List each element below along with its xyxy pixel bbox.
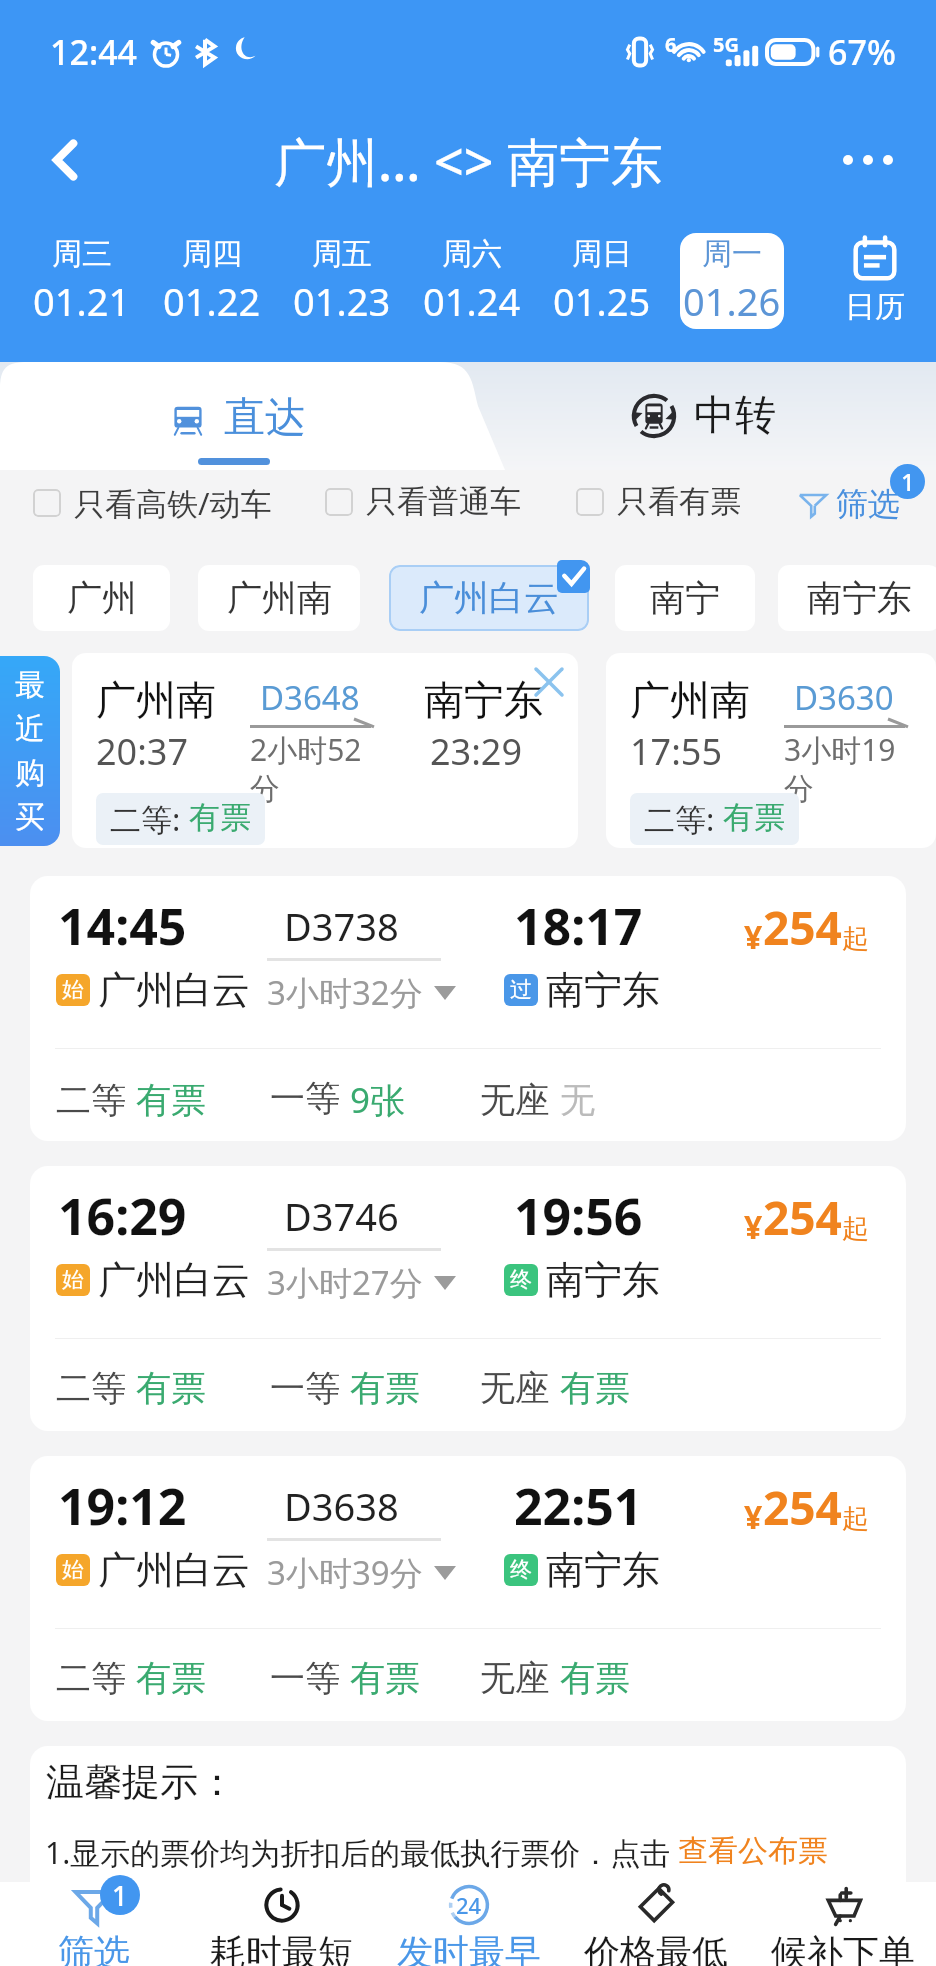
staticText: 查看公布票 bbox=[678, 1832, 828, 1870]
staticText: 1 bbox=[901, 465, 915, 498]
staticText: 有票 bbox=[136, 1078, 206, 1122]
button[interactable]: 只看普通车 bbox=[325, 482, 521, 521]
staticText: 周四 bbox=[182, 235, 242, 273]
staticText: 周日 bbox=[572, 235, 632, 273]
button[interactable]: 广州南 bbox=[72, 653, 578, 848]
button[interactable]: 14:45 bbox=[30, 876, 906, 1141]
staticText: 1 bbox=[112, 1877, 128, 1914]
staticText: 广州南 bbox=[630, 675, 750, 725]
staticText: ¥ bbox=[744, 1205, 763, 1249]
button[interactable]: 筛选 bbox=[798, 484, 900, 524]
staticText: 筛选 bbox=[836, 484, 900, 524]
button[interactable]: 南宁东 bbox=[778, 565, 936, 631]
staticText: 周三 bbox=[52, 235, 112, 273]
staticText: 过 bbox=[510, 976, 532, 1004]
staticText: 广州白云 bbox=[98, 1546, 250, 1594]
staticText: 16:29 bbox=[58, 1182, 187, 1250]
staticText: 二等 bbox=[56, 1656, 126, 1700]
staticText: 19:56 bbox=[514, 1182, 643, 1250]
button[interactable]: 只看高铁/动车 bbox=[33, 482, 272, 524]
staticText: 有票 bbox=[350, 1656, 420, 1700]
button[interactable]: 周三 bbox=[30, 233, 134, 329]
staticText: 日历 bbox=[845, 288, 905, 326]
staticText: 始 bbox=[62, 976, 84, 1004]
staticText: 01.21 bbox=[33, 275, 131, 327]
staticText: 只看高铁/动车 bbox=[74, 482, 272, 524]
staticText: 254 bbox=[763, 896, 842, 959]
staticText: 23:29 bbox=[430, 727, 523, 776]
button[interactable]: 广州 bbox=[33, 565, 170, 631]
staticText: 12:44 bbox=[50, 29, 138, 75]
staticText: 14:45 bbox=[58, 892, 187, 960]
button[interactable]: 19:12 bbox=[30, 1456, 906, 1721]
staticText: 6 bbox=[665, 31, 677, 58]
staticText: 周五 bbox=[312, 235, 372, 273]
button[interactable]: 24 bbox=[375, 1882, 562, 1966]
staticText: 终 bbox=[510, 1266, 532, 1294]
staticText: 3小时19分 bbox=[784, 729, 912, 808]
staticText: 有票 bbox=[136, 1366, 206, 1410]
staticText: 中转 bbox=[694, 390, 776, 442]
staticText: 广州南 bbox=[96, 675, 216, 725]
staticText: 南宁东 bbox=[546, 966, 660, 1014]
staticText: ¥ bbox=[744, 915, 763, 959]
button[interactable]: 周四 bbox=[160, 233, 264, 329]
button[interactable]: 1 bbox=[0, 1882, 188, 1966]
staticText: D3630 bbox=[794, 675, 894, 720]
button[interactable]: 候补下单 bbox=[749, 1882, 936, 1966]
staticText: 2小时52分 bbox=[250, 729, 378, 808]
staticText: 广州... <> 南宁东 bbox=[274, 125, 663, 196]
staticText: 南宁 bbox=[650, 576, 720, 620]
staticText: 起 bbox=[842, 1212, 869, 1246]
staticText: D3746 bbox=[284, 1190, 399, 1242]
staticText: 周一 bbox=[702, 235, 762, 273]
staticText: 01.23 bbox=[293, 275, 391, 327]
button[interactable]: Close bbox=[520, 653, 578, 711]
staticText: 3小时32分 bbox=[267, 970, 423, 1015]
button[interactable]: 只看有票 bbox=[576, 482, 741, 521]
button[interactable]: 中转 bbox=[608, 362, 888, 470]
staticText: 周六 bbox=[442, 235, 502, 273]
button[interactable]: 广州南 bbox=[198, 565, 360, 631]
button[interactable]: 周六 bbox=[420, 233, 524, 329]
staticText: 温馨提示： bbox=[46, 1758, 236, 1806]
staticText: 254 bbox=[763, 1476, 842, 1539]
staticText: 254 bbox=[763, 1186, 842, 1249]
button[interactable]: 直达 bbox=[120, 362, 360, 470]
button[interactable]: 最近购买 bbox=[0, 656, 60, 846]
staticText: 南宁东 bbox=[546, 1546, 660, 1594]
staticText: D3648 bbox=[260, 675, 360, 720]
button[interactable]: 广州南 bbox=[606, 653, 936, 848]
button[interactable]: 16:29 bbox=[30, 1166, 906, 1431]
staticText: 有票 bbox=[723, 798, 785, 837]
staticText: 无座 bbox=[480, 1078, 550, 1122]
button[interactable]: 广州白云 bbox=[389, 565, 589, 631]
staticText: 广州白云 bbox=[98, 966, 250, 1014]
staticText: D3638 bbox=[284, 1480, 399, 1532]
staticText: 候补下单 bbox=[771, 1930, 915, 1966]
staticText: 起 bbox=[842, 1502, 869, 1536]
staticText: 起 bbox=[842, 922, 869, 956]
button[interactable]: 周五 bbox=[290, 233, 394, 329]
staticText: 01.26 bbox=[683, 275, 781, 327]
staticText: 01.25 bbox=[553, 275, 651, 327]
button[interactable]: More options bbox=[824, 116, 912, 204]
staticText: 南宁东 bbox=[424, 675, 544, 725]
staticText: 一等 bbox=[270, 1366, 340, 1410]
staticText: 筛选 bbox=[58, 1930, 130, 1966]
staticText: 20:37 bbox=[96, 727, 189, 776]
button[interactable]: Back bbox=[22, 116, 110, 204]
button[interactable]: Calendar bbox=[820, 226, 930, 336]
staticText: 有票 bbox=[136, 1656, 206, 1700]
button[interactable]: 价格最低 bbox=[562, 1882, 749, 1966]
staticText: 无 bbox=[560, 1078, 595, 1122]
button[interactable]: 南宁 bbox=[615, 565, 755, 631]
staticText: 广州南 bbox=[227, 576, 332, 620]
staticText: 直达 bbox=[224, 392, 306, 444]
staticText: 二等: bbox=[644, 798, 723, 840]
staticText: 一等 bbox=[270, 1076, 340, 1120]
button[interactable]: 周一 bbox=[680, 233, 784, 329]
staticText: 终 bbox=[510, 1556, 532, 1584]
button[interactable]: 耗时最短 bbox=[188, 1882, 375, 1966]
button[interactable]: 周日 bbox=[550, 233, 654, 329]
